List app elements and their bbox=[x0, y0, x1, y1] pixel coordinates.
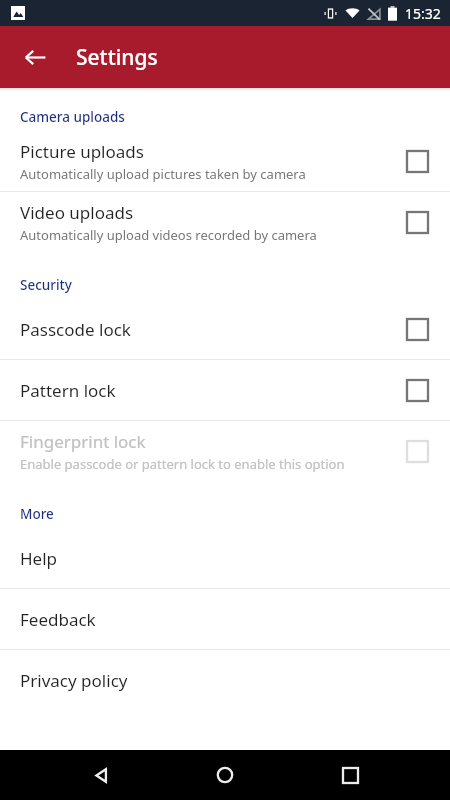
staticText: Camera uploads bbox=[20, 108, 125, 126]
staticText: Feedback bbox=[20, 608, 96, 631]
button[interactable]: Home bbox=[201, 751, 249, 799]
staticText: Privacy policy bbox=[20, 669, 128, 692]
staticText: 15:32 bbox=[405, 4, 441, 23]
staticText: Passcode lock bbox=[20, 318, 131, 341]
button[interactable]: Back bbox=[13, 35, 57, 79]
button[interactable]: Help bbox=[0, 528, 450, 588]
staticText: Automatically upload pictures taken by c… bbox=[20, 165, 306, 183]
button[interactable]: Fingerprint lock bbox=[0, 421, 450, 481]
button[interactable]: Privacy policy bbox=[0, 650, 450, 710]
button[interactable]: Back bbox=[77, 751, 125, 799]
button[interactable]: Passcode lock bbox=[0, 299, 450, 359]
staticText: More bbox=[20, 505, 54, 523]
button[interactable]: Feedback bbox=[0, 589, 450, 649]
staticText: Enable passcode or pattern lock to enabl… bbox=[20, 455, 345, 473]
button[interactable]: Picture uploads bbox=[0, 131, 450, 191]
button[interactable]: Recents bbox=[326, 751, 374, 799]
staticText: Pattern lock bbox=[20, 379, 116, 402]
staticText: Security bbox=[20, 276, 72, 294]
staticText: Picture uploads bbox=[20, 140, 144, 163]
staticText: Video uploads bbox=[20, 201, 134, 224]
staticText: Automatically upload videos recorded by … bbox=[20, 226, 317, 244]
staticText: Fingerprint lock bbox=[20, 430, 146, 453]
button[interactable]: Video uploads bbox=[0, 192, 450, 252]
staticText: Settings bbox=[76, 43, 158, 72]
staticText: Help bbox=[20, 547, 58, 570]
button[interactable]: Pattern lock bbox=[0, 360, 450, 420]
